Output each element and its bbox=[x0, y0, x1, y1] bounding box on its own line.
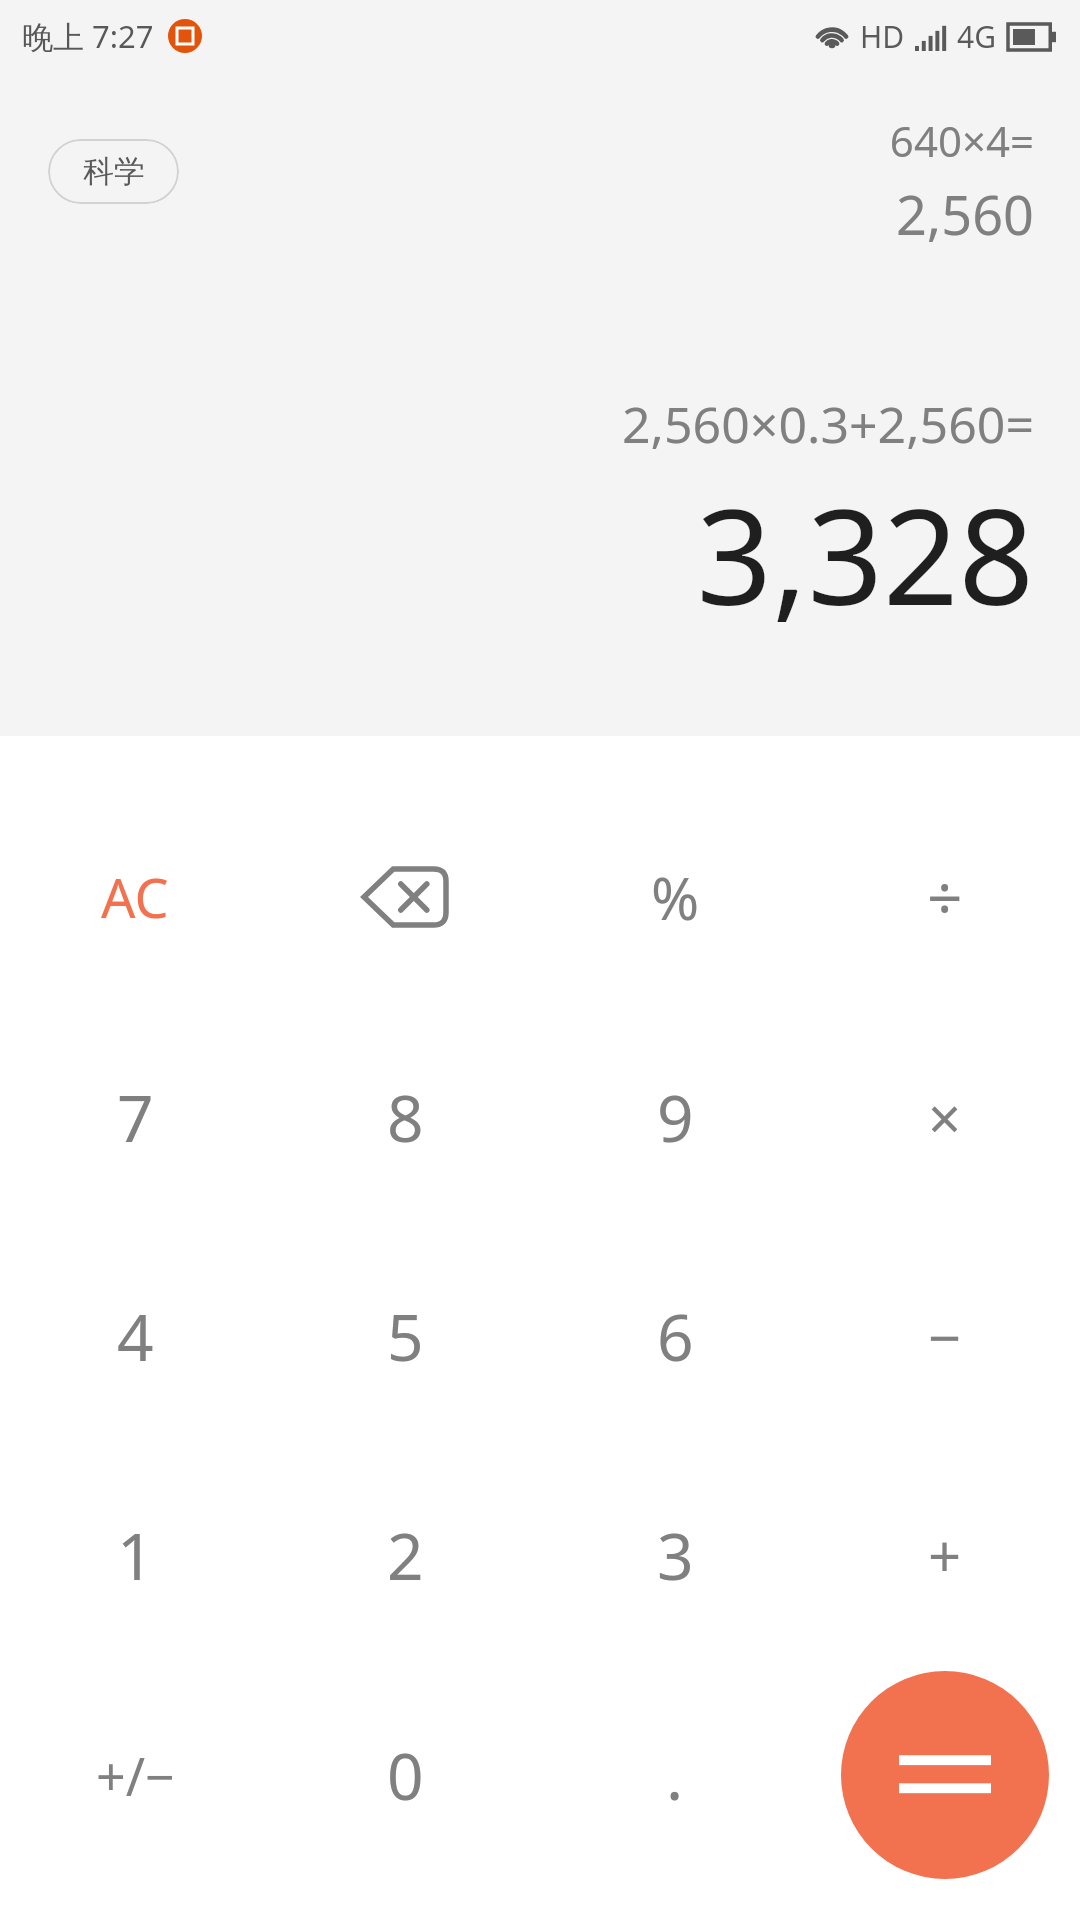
button[interactable]: 0 bbox=[270, 1671, 540, 1879]
staticText: 640×4= bbox=[889, 112, 1034, 169]
button[interactable]: ÷ bbox=[810, 793, 1080, 1001]
staticText: 8 bbox=[387, 1074, 424, 1161]
button[interactable]: AC bbox=[0, 793, 270, 1001]
staticText: 7 bbox=[117, 1074, 154, 1161]
button[interactable]: +/− bbox=[0, 1671, 270, 1879]
staticText: 0 bbox=[387, 1732, 424, 1819]
button[interactable]: % bbox=[540, 793, 810, 1001]
button[interactable]: 7 bbox=[0, 1013, 270, 1221]
button[interactable]: + bbox=[810, 1451, 1080, 1659]
button[interactable]: Equals bbox=[841, 1671, 1049, 1879]
staticText: 1 bbox=[117, 1512, 154, 1599]
staticText: + bbox=[928, 1516, 962, 1595]
button[interactable]: 1 bbox=[0, 1451, 270, 1659]
button[interactable]: 4 bbox=[0, 1232, 270, 1440]
staticText: 3,328 bbox=[696, 464, 1034, 644]
staticText: 5 bbox=[387, 1293, 424, 1380]
staticText: − bbox=[928, 1297, 962, 1376]
button[interactable]: × bbox=[810, 1013, 1080, 1221]
staticText: HD bbox=[860, 16, 905, 57]
staticText: 2,560 bbox=[895, 177, 1034, 251]
staticText: ÷ bbox=[927, 855, 963, 939]
staticText: % bbox=[651, 858, 700, 937]
button[interactable]: . bbox=[540, 1671, 810, 1879]
button[interactable]: Delete bbox=[270, 793, 540, 1001]
staticText: 2,560×0.3+2,560= bbox=[622, 390, 1034, 458]
staticText: +/− bbox=[96, 1740, 175, 1811]
staticText: 3 bbox=[657, 1512, 694, 1599]
staticText: AC bbox=[101, 860, 169, 934]
staticText: 4 bbox=[117, 1293, 154, 1380]
button[interactable]: − bbox=[810, 1232, 1080, 1440]
staticText: 2 bbox=[387, 1512, 424, 1599]
staticText: 6 bbox=[657, 1293, 694, 1380]
button[interactable]: 科学 bbox=[48, 139, 179, 204]
button[interactable]: 8 bbox=[270, 1013, 540, 1221]
button[interactable]: 5 bbox=[270, 1232, 540, 1440]
staticText: 晚上 7:27 bbox=[22, 15, 154, 57]
button[interactable]: 9 bbox=[540, 1013, 810, 1221]
button[interactable]: 6 bbox=[540, 1232, 810, 1440]
button[interactable]: 2 bbox=[270, 1451, 540, 1659]
staticText: 9 bbox=[657, 1074, 694, 1161]
staticText: 4G bbox=[957, 16, 996, 57]
button[interactable]: 3 bbox=[540, 1451, 810, 1659]
staticText: × bbox=[928, 1078, 962, 1157]
staticText: 科学 bbox=[83, 152, 145, 191]
staticText: . bbox=[666, 1732, 684, 1819]
